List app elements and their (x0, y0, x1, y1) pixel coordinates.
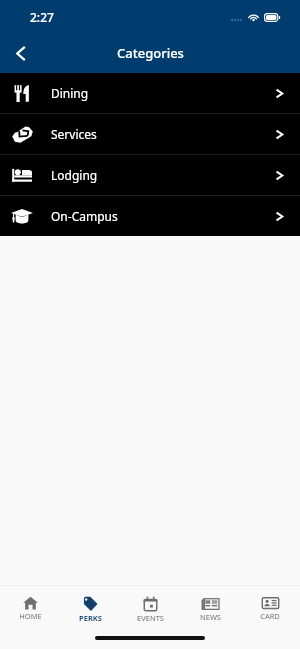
button[interactable]: NEWS (180, 586, 240, 622)
staticText: PERKS (79, 613, 102, 623)
button[interactable]: PERKS (60, 586, 120, 623)
staticText: Services (51, 126, 97, 142)
staticText: Lodging (51, 167, 98, 183)
staticText: EVENTS (137, 613, 164, 623)
staticText: On-Campus (51, 208, 118, 224)
staticText: 2:27 (30, 9, 54, 25)
staticText: Dining (51, 85, 89, 101)
button[interactable]: EVENTS (120, 586, 180, 623)
staticText: HOME (19, 611, 42, 621)
button[interactable]: Back (4, 36, 38, 70)
staticText: Categories (117, 44, 184, 62)
button[interactable]: CARD (240, 586, 300, 621)
button[interactable]: Dining (0, 73, 300, 113)
staticText: CARD (260, 611, 280, 621)
button[interactable]: Lodging (0, 155, 300, 195)
button[interactable]: On-Campus (0, 196, 300, 236)
button[interactable]: HOME (0, 586, 60, 621)
button[interactable]: Services (0, 114, 300, 154)
staticText: NEWS (200, 612, 221, 622)
